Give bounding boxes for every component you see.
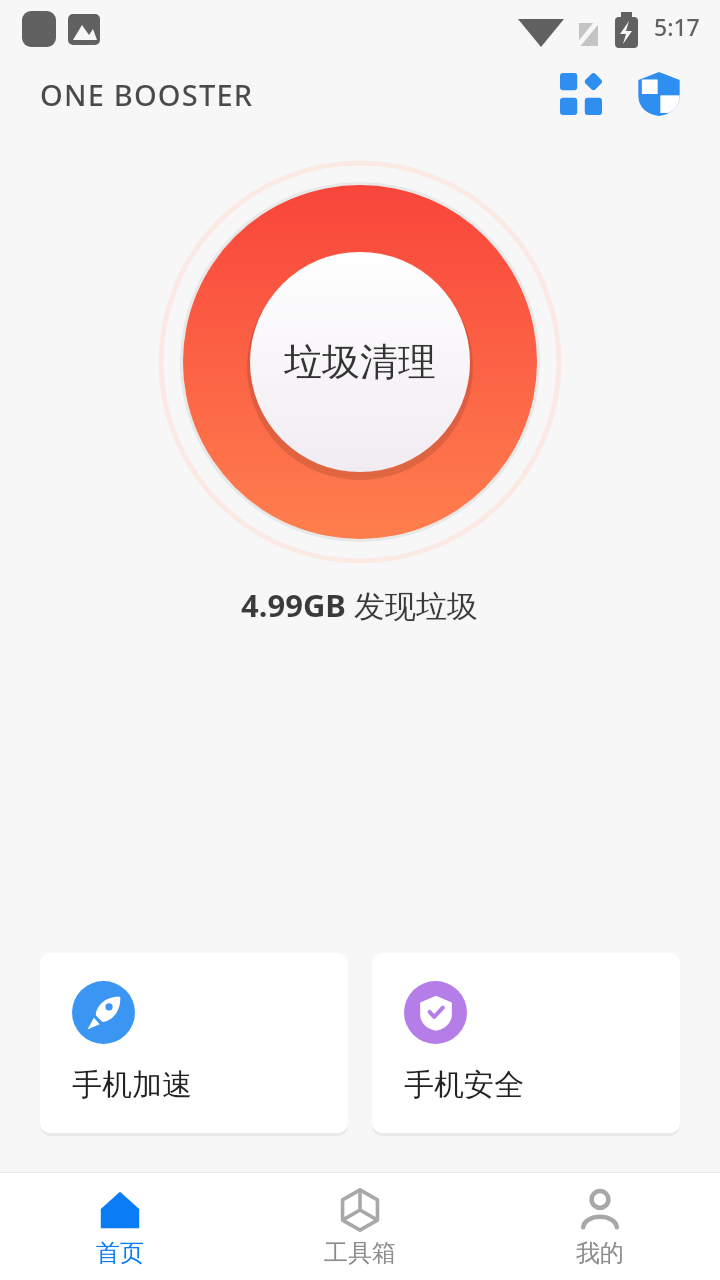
button[interactable]: 我的	[480, 1173, 720, 1280]
staticText: 垃圾清理	[284, 338, 436, 386]
button[interactable]: 手机加速	[40, 953, 348, 1133]
button[interactable]: 工具箱	[240, 1173, 480, 1280]
staticText: ONE BOOSTER	[40, 75, 254, 114]
staticText: 工具箱	[324, 1238, 396, 1268]
staticText: 4.99GB 发现垃圾	[241, 584, 479, 626]
staticText: 首页	[96, 1238, 144, 1268]
staticText: 我的	[576, 1238, 624, 1268]
button[interactable]: 垃圾清理	[250, 252, 470, 472]
staticText: 手机加速	[72, 1066, 192, 1104]
button[interactable]: 首页	[0, 1173, 240, 1280]
staticText: 5:17	[654, 11, 700, 42]
button[interactable]: Security	[628, 63, 690, 125]
staticText: 手机安全	[404, 1066, 524, 1104]
button[interactable]: 手机安全	[372, 953, 680, 1133]
button[interactable]: Apps	[550, 63, 612, 125]
